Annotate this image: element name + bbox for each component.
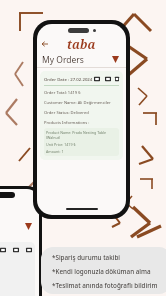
staticText: Products Informations : <box>44 120 90 126</box>
button[interactable]: Order Date : 27.02.2024 <box>40 71 123 160</box>
staticText: *Kendi logonuzla döküman alma <box>52 267 151 276</box>
staticText: Customer Name: Ali Değirmenciler <box>44 100 111 106</box>
staticText: My Orders <box>42 54 84 66</box>
button[interactable]: üler <box>0 242 35 296</box>
staticText: Order Status: Delivered <box>44 110 89 116</box>
button[interactable]: Download document <box>104 75 111 82</box>
button[interactable]: Filter <box>110 54 121 65</box>
staticText: Order Date : 27.02.2024 <box>44 76 93 82</box>
button[interactable]: Back <box>40 39 50 49</box>
staticText: Product Name: Prado Nesting Table (Walnu… <box>46 130 117 140</box>
staticText: Amount: 1 <box>46 149 64 154</box>
button[interactable]: Download document <box>93 75 100 82</box>
staticText: Unit Price: 1419 ₺ <box>46 142 76 147</box>
staticText: *Sipariş durumu takibi <box>52 253 121 262</box>
staticText: taba <box>67 36 96 52</box>
button[interactable]: Download document <box>115 75 119 82</box>
staticText: Order Total: 1419 ₺ <box>44 90 81 96</box>
staticText: *Teslimat anında fotoğraflı bildirim <box>52 281 158 290</box>
